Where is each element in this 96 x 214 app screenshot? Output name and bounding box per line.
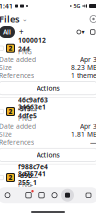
staticText: Date added xyxy=(0,55,36,64)
button[interactable]: Uploads xyxy=(22,189,35,202)
staticText: 5G xyxy=(74,2,81,10)
staticText: 8d75741255_1 xyxy=(18,169,46,187)
staticText: 34663e14dfe5 xyxy=(18,102,46,120)
staticText: PNG xyxy=(18,180,32,189)
button[interactable]: More xyxy=(82,189,95,202)
staticText: 2 xyxy=(8,44,12,53)
staticText: 8.23 MB xyxy=(71,63,96,72)
button[interactable]: Select file xyxy=(0,106,6,117)
staticText: f988c7e4-a9b... xyxy=(18,162,48,180)
staticText: + xyxy=(19,27,24,37)
staticText: References xyxy=(0,138,34,147)
staticText: All xyxy=(3,28,11,36)
staticText: Apr 3 xyxy=(80,122,96,131)
staticText: PNG xyxy=(18,47,32,56)
button[interactable]: All xyxy=(0,26,15,38)
staticText: Actions xyxy=(36,84,59,93)
button[interactable]: Select file xyxy=(0,43,6,53)
staticText: Files xyxy=(0,13,20,25)
staticText: 1.81 MB xyxy=(71,130,96,139)
staticText: — xyxy=(90,138,96,147)
staticText: 1:41 xyxy=(0,2,13,10)
staticText: 2 xyxy=(8,107,12,116)
button[interactable]: Search xyxy=(1,189,14,202)
button[interactable]: Library xyxy=(35,189,48,202)
staticText: Size xyxy=(0,130,12,139)
staticText: 46c9af63-5f3... xyxy=(18,95,48,113)
staticText: PNG xyxy=(18,114,32,123)
staticText: 1000012244 xyxy=(18,36,46,53)
button[interactable]: Sync xyxy=(48,189,61,202)
staticText: References xyxy=(0,71,34,80)
button[interactable]: Settings xyxy=(85,13,96,24)
button[interactable]: Sort xyxy=(88,28,96,36)
button[interactable]: Files xyxy=(61,189,74,202)
staticText: ▼ xyxy=(81,30,84,34)
staticText: ⌄ xyxy=(22,15,28,23)
button[interactable]: Actions xyxy=(0,148,96,162)
staticText: 2 xyxy=(8,173,12,182)
button[interactable]: Files xyxy=(0,11,33,27)
staticText: 1 theme xyxy=(71,71,96,80)
button[interactable]: Add filter xyxy=(18,28,25,36)
button[interactable]: Search and filter xyxy=(76,28,85,36)
staticText: Size xyxy=(0,63,12,72)
button[interactable]: Actions xyxy=(0,81,96,95)
staticText: Apr 3 xyxy=(80,55,96,64)
staticText: Date added xyxy=(0,122,36,131)
staticText: Actions xyxy=(36,150,59,159)
